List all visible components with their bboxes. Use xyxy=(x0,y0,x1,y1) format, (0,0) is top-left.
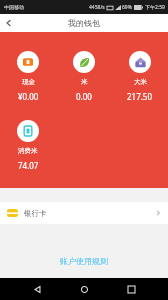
staticText: 下午2:59 xyxy=(145,4,165,11)
button[interactable]: Recents xyxy=(121,279,141,299)
button[interactable]: 银行卡 xyxy=(0,202,168,224)
button[interactable]: 大米 xyxy=(112,49,168,104)
button[interactable]: 账户使用规则 xyxy=(54,250,114,272)
staticText: 4458/s xyxy=(89,4,105,11)
button[interactable]: Home xyxy=(74,279,94,299)
staticText: 0.00 xyxy=(76,91,92,102)
button[interactable]: 消费米 xyxy=(0,118,56,173)
staticText: 米 xyxy=(81,78,88,86)
staticText: 69% xyxy=(122,4,132,11)
button[interactable]: 米 xyxy=(56,49,112,104)
staticText: 217.50 xyxy=(127,91,153,102)
staticText: ¥0.00 xyxy=(18,91,39,102)
staticText: 中国移动 xyxy=(4,4,24,10)
staticText: 74.07 xyxy=(18,160,39,171)
staticText: 银行卡 xyxy=(24,209,47,218)
staticText: 大米 xyxy=(134,78,147,86)
staticText: 现金 xyxy=(22,78,35,86)
staticText: 我的钱包 xyxy=(68,18,100,28)
button[interactable]: 现金 xyxy=(0,49,56,104)
button[interactable]: Back xyxy=(27,279,47,299)
staticText: 消费米 xyxy=(18,147,38,155)
button[interactable]: Back xyxy=(0,14,18,32)
